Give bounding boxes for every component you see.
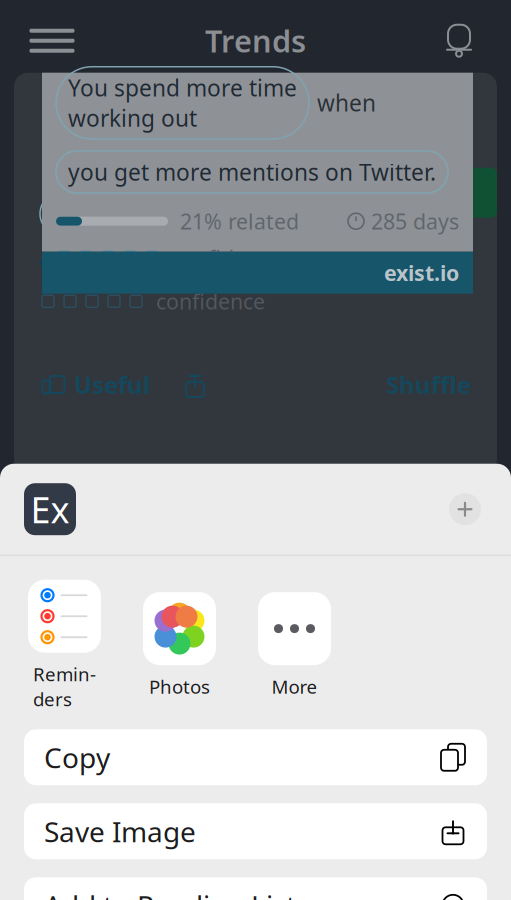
staticText: More xyxy=(271,674,317,699)
button[interactable]: More xyxy=(258,592,331,699)
staticText: Copy xyxy=(44,739,110,776)
button[interactable]: Share xyxy=(178,367,212,401)
staticText: Photos xyxy=(149,674,210,699)
button[interactable]: Copy xyxy=(24,729,487,785)
staticText: you get more mentions on Twitter. xyxy=(52,199,420,229)
staticText: exist.io xyxy=(384,258,459,287)
button[interactable]: Shuffle xyxy=(386,368,471,400)
button[interactable]: Reminders xyxy=(28,580,101,711)
button[interactable]: Photos xyxy=(143,592,216,699)
staticText: Ex xyxy=(30,485,69,533)
staticText: Add to Reading List xyxy=(44,887,296,900)
staticText: Shuffle xyxy=(386,368,471,400)
staticText: 285 days xyxy=(383,249,471,277)
staticText: confidence xyxy=(156,287,265,315)
staticText: 21% related xyxy=(180,207,299,235)
staticText: when xyxy=(317,88,376,118)
staticText: Trends xyxy=(205,20,306,61)
button[interactable]: Menu xyxy=(24,19,80,63)
button[interactable]: Close xyxy=(443,487,487,531)
button[interactable]: Useful xyxy=(40,368,150,400)
button[interactable]: Save Image xyxy=(24,803,487,859)
staticText: you get more mentions on Twitter. xyxy=(68,157,436,187)
staticText: Save Image xyxy=(44,813,196,850)
button[interactable]: Add to Reading List xyxy=(24,877,487,900)
staticText: You spend more time working out xyxy=(68,73,297,133)
staticText: confidence xyxy=(172,243,281,272)
staticText: 21% related xyxy=(164,249,283,277)
staticText: Reminders xyxy=(33,662,96,711)
button[interactable]: Notifications xyxy=(431,19,487,63)
staticText: Useful xyxy=(74,368,150,400)
staticText: 285 days xyxy=(371,207,459,235)
